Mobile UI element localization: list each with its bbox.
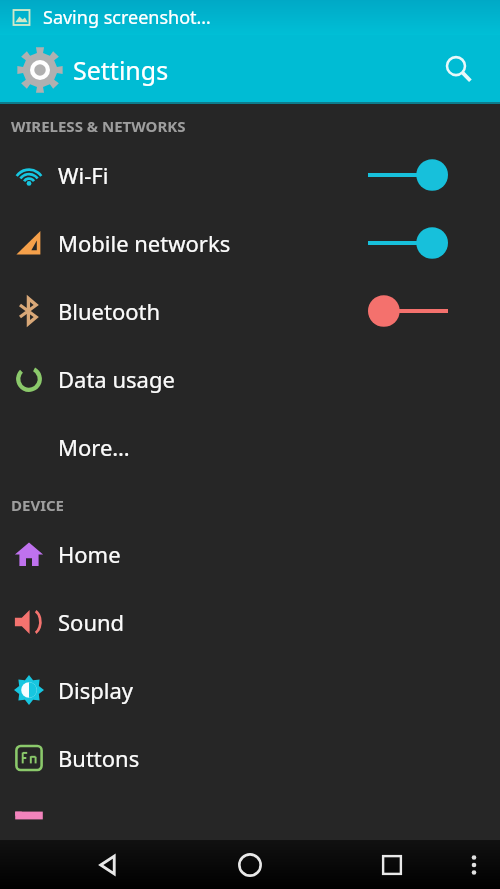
staticText (58, 811, 500, 841)
staticText: Buttons (58, 743, 500, 773)
button[interactable]: Mobile networks switch (368, 225, 448, 261)
button[interactable]: Data usage (0, 345, 500, 413)
staticText: Saving screenshot… (43, 5, 211, 30)
button[interactable]: Recents (342, 840, 442, 889)
button[interactable]: Back (58, 840, 158, 889)
button[interactable]: Home (200, 840, 300, 889)
staticText: Home (58, 539, 500, 569)
button[interactable]: Wi-Fi (0, 141, 500, 209)
button[interactable]: Search (436, 47, 482, 93)
button[interactable] (0, 792, 500, 860)
staticText: Sound (58, 607, 500, 637)
button[interactable]: Mobile networks (0, 209, 500, 277)
button[interactable]: More… (0, 413, 500, 481)
button[interactable]: More options (448, 840, 500, 889)
button[interactable]: Home (0, 520, 500, 588)
staticText: More… (58, 432, 500, 462)
staticText: DEVICE (11, 495, 64, 515)
button[interactable]: Display (0, 656, 500, 724)
staticText: Mobile networks (58, 228, 368, 258)
button[interactable]: Wi-Fi switch (368, 157, 448, 193)
staticText: Settings (73, 53, 169, 87)
button[interactable]: Buttons (0, 724, 500, 792)
button[interactable]: Sound (0, 588, 500, 656)
button[interactable]: Bluetooth switch (368, 293, 448, 329)
staticText: Display (58, 675, 500, 705)
button[interactable]: Bluetooth (0, 277, 500, 345)
staticText: Bluetooth (58, 296, 368, 326)
staticText: WIRELESS & NETWORKS (11, 116, 186, 136)
staticText: Data usage (58, 364, 500, 394)
staticText: Wi-Fi (58, 160, 368, 190)
